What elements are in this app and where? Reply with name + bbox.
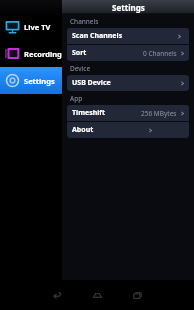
button[interactable]: Home xyxy=(77,280,117,310)
staticText: Recordings xyxy=(24,49,62,59)
button[interactable]: Back xyxy=(37,280,77,310)
staticText: 256 MBytes xyxy=(141,109,177,118)
staticText: Scan Channels xyxy=(72,31,123,41)
button[interactable]: Settings xyxy=(0,67,62,94)
staticText: Device xyxy=(70,64,91,73)
staticText: Settings xyxy=(24,76,55,86)
staticText: Timeshift Buffer xyxy=(72,108,106,118)
staticText: USB Device Info xyxy=(72,78,126,88)
button[interactable]: Scan Channels xyxy=(67,28,189,44)
staticText: Settings xyxy=(112,2,145,13)
staticText: App xyxy=(70,94,83,103)
staticText: 0 Channels xyxy=(143,49,177,58)
button[interactable]: Recents xyxy=(117,280,157,310)
button[interactable]: Live TV xyxy=(0,13,62,40)
staticText: Sort Channels xyxy=(72,48,107,58)
staticText: About xyxy=(72,125,94,135)
staticText: Live TV xyxy=(24,22,51,32)
button[interactable]: Timeshift Buffer xyxy=(67,105,189,121)
staticText: Channels xyxy=(70,17,99,26)
button[interactable]: About xyxy=(67,122,189,138)
button[interactable]: Recordings xyxy=(0,40,62,67)
button[interactable]: USB Device Info xyxy=(67,75,189,91)
button[interactable]: Sort Channels xyxy=(67,45,189,61)
